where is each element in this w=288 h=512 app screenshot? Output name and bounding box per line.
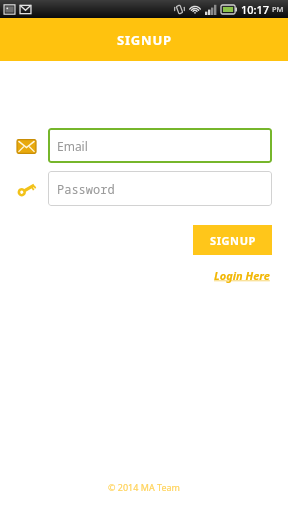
- button[interactable]: Login Here: [212, 266, 272, 285]
- button[interactable]: SIGNUP: [193, 225, 272, 255]
- staticText: Login Here: [214, 268, 270, 283]
- staticText: SIGNUP: [117, 31, 172, 49]
- staticText: Password: [57, 181, 115, 197]
- button[interactable]: Password: [48, 171, 272, 206]
- staticText: PM: [272, 4, 284, 14]
- staticText: © 2014 MA Team: [108, 481, 180, 493]
- staticText: Email: [57, 138, 88, 154]
- other: Email: [14, 134, 38, 158]
- other: Password: [14, 177, 38, 201]
- button[interactable]: Email: [48, 128, 272, 163]
- staticText: 10:17: [241, 2, 270, 17]
- staticText: SIGNUP: [210, 233, 256, 248]
